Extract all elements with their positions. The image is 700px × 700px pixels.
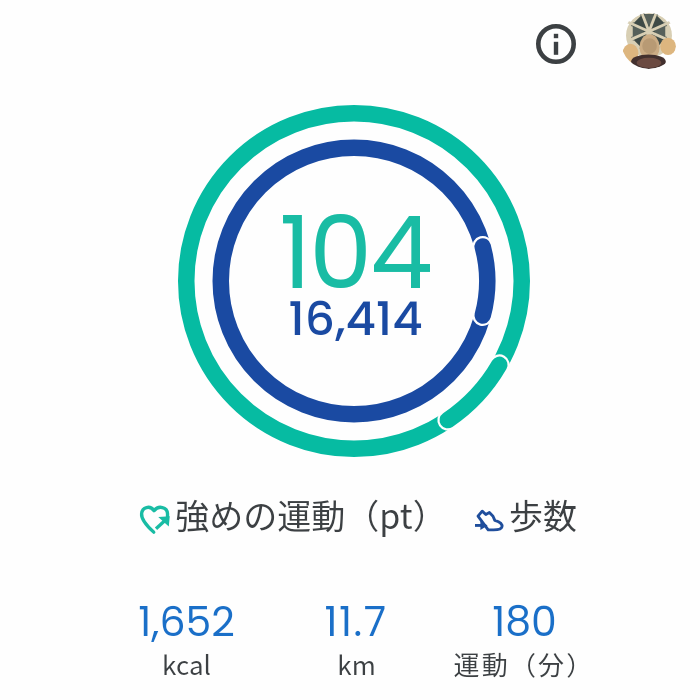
- staticText: 16,414: [288, 286, 423, 352]
- staticText: km: [337, 645, 376, 683]
- staticText: 歩数: [509, 490, 577, 538]
- button[interactable]: 1,652: [76, 592, 296, 688]
- staticText: 11.7: [324, 593, 388, 650]
- staticText: 180: [492, 593, 557, 650]
- staticText: 104: [279, 183, 431, 323]
- button[interactable]: 強めの運動（pt）: [134, 492, 429, 540]
- staticText: kcal: [162, 645, 211, 683]
- button[interactable]: 歩数: [468, 492, 580, 540]
- button[interactable]: 11.7: [246, 592, 466, 688]
- button[interactable]: 180: [414, 592, 634, 688]
- staticText: 運動（分）: [453, 645, 595, 683]
- button[interactable]: Profile: [621, 13, 677, 69]
- button[interactable]: Info: [526, 14, 586, 74]
- staticText: 1,652: [138, 593, 235, 650]
- staticText: 強めの運動（pt）: [175, 490, 447, 538]
